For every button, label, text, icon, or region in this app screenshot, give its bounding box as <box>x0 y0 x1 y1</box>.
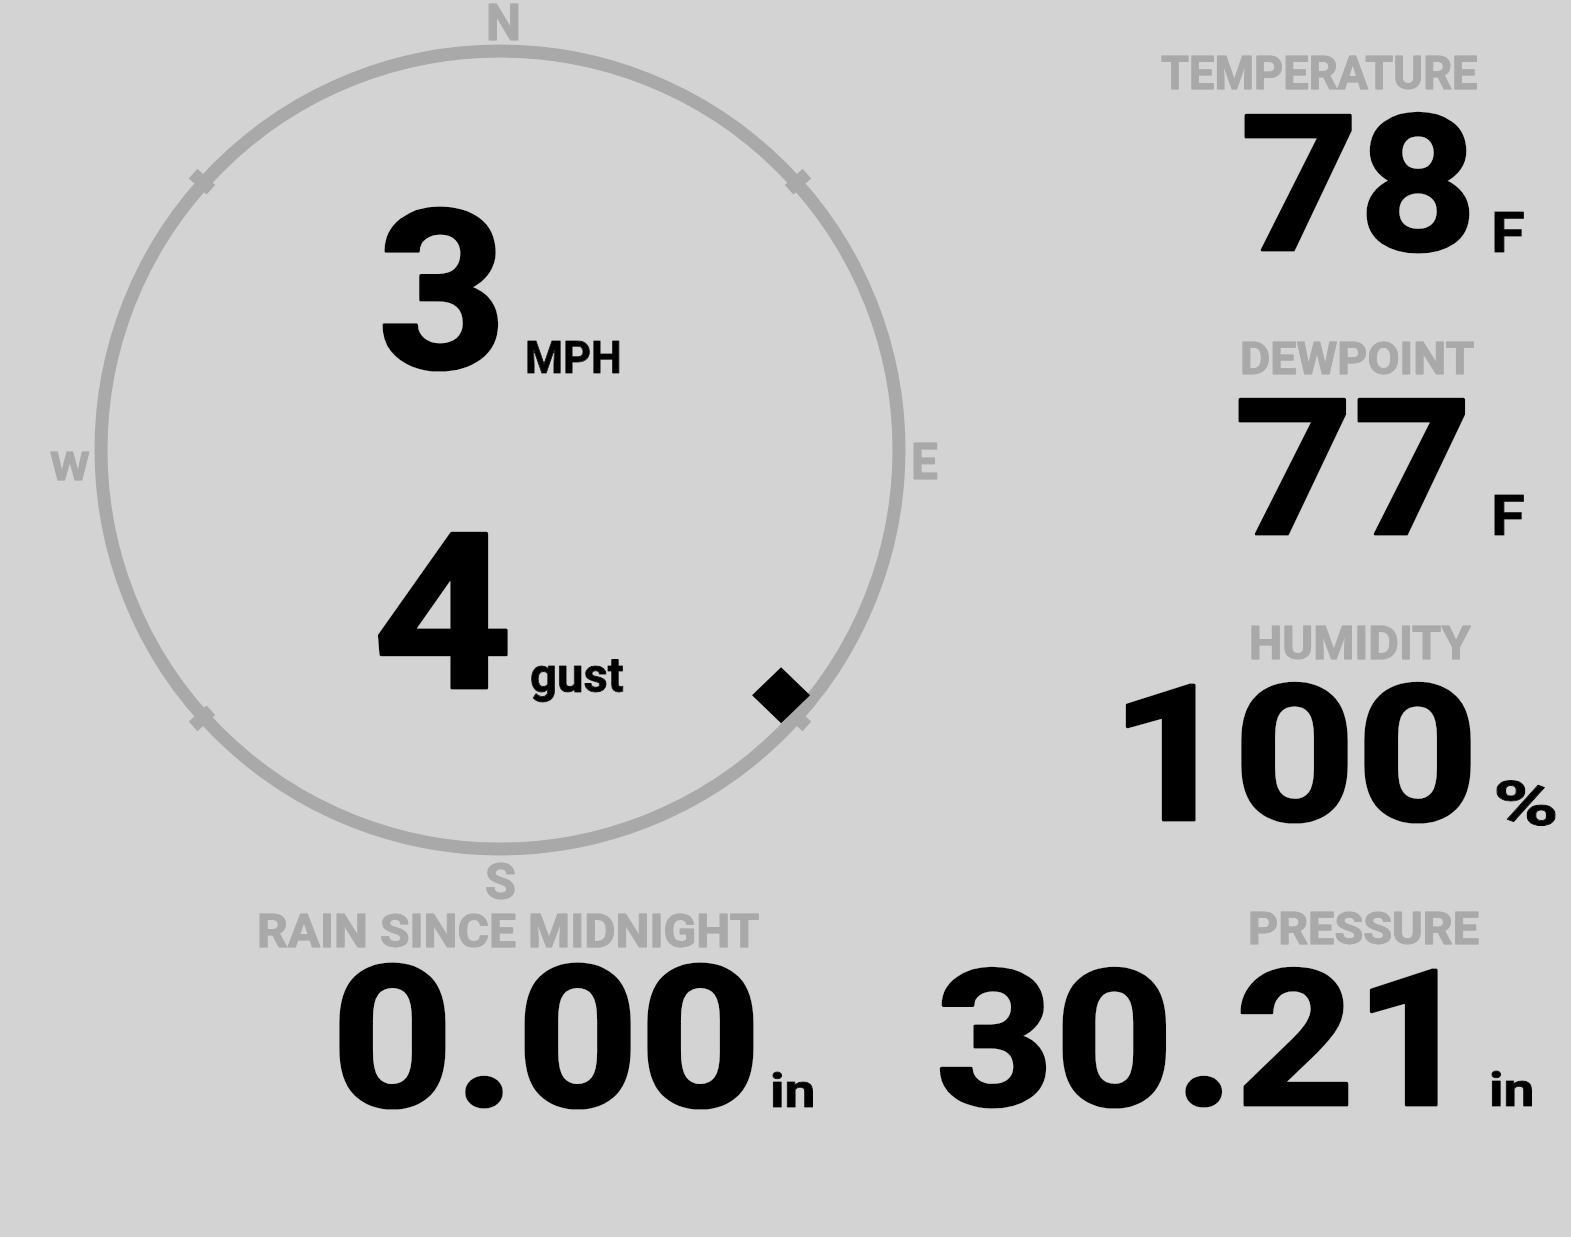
button[interactable]: Rain since midnight 0.00 inches <box>200 898 840 1128</box>
staticText: E <box>911 432 938 491</box>
staticText: DEWPOINT <box>1240 332 1475 385</box>
staticText: 0.00 <box>331 924 763 1154</box>
staticText: 78 <box>1240 75 1478 297</box>
staticText: 3 <box>377 164 508 422</box>
staticText: PRESSURE <box>1248 903 1480 955</box>
staticText: PRESSURE <box>1248 903 1480 955</box>
staticText: W <box>50 444 91 490</box>
staticText: % <box>1493 768 1560 840</box>
staticText: S <box>485 853 516 911</box>
staticText: 0.00 <box>331 924 763 1154</box>
staticText: 4 <box>373 486 514 741</box>
staticText: TEMPERATURE <box>1161 46 1478 101</box>
staticText: 4 <box>373 486 514 741</box>
staticText: 100 <box>1110 644 1480 866</box>
button[interactable]: Temperature 78 degrees Fahrenheit <box>1130 40 1571 270</box>
staticText: 30.21 <box>935 929 1475 1151</box>
staticText: S <box>485 853 516 911</box>
staticText: F <box>1491 200 1525 266</box>
staticText: N <box>486 0 522 52</box>
staticText: W <box>50 444 91 490</box>
staticText: in <box>770 1064 816 1119</box>
staticText: in <box>1489 1063 1535 1118</box>
staticText: N <box>486 0 522 52</box>
button[interactable]: Dew point 77 degrees Fahrenheit <box>1130 325 1571 555</box>
staticText: 77 <box>1234 358 1473 580</box>
staticText: 100 <box>1110 644 1480 866</box>
staticText: gust <box>530 648 624 703</box>
staticText: 3 <box>377 164 508 422</box>
staticText: F <box>1491 483 1525 549</box>
staticText: 30.21 <box>935 929 1475 1151</box>
staticText: E <box>911 432 938 491</box>
staticText: in <box>1489 1063 1535 1118</box>
staticText: 77 <box>1234 358 1473 580</box>
staticText: 78 <box>1240 75 1478 297</box>
staticText: MPH <box>525 332 622 384</box>
staticText: HUMIDITY <box>1249 617 1471 670</box>
button[interactable]: Wind 3 MPH gusting 4, direction south-ea… <box>61 11 939 889</box>
button[interactable]: Humidity 100 percent <box>1010 610 1571 845</box>
staticText: F <box>1491 483 1525 549</box>
staticText: F <box>1491 200 1525 266</box>
staticText: TEMPERATURE <box>1161 46 1478 101</box>
staticText: RAIN SINCE MIDNIGHT <box>257 904 759 958</box>
staticText: MPH <box>525 332 622 384</box>
staticText: in <box>770 1064 816 1119</box>
staticText: RAIN SINCE MIDNIGHT <box>257 904 759 958</box>
staticText: % <box>1493 768 1560 840</box>
staticText: DEWPOINT <box>1240 332 1475 385</box>
staticText: HUMIDITY <box>1249 617 1471 670</box>
button[interactable]: Pressure 30.21 inches <box>880 898 1571 1128</box>
staticText: gust <box>530 648 624 703</box>
